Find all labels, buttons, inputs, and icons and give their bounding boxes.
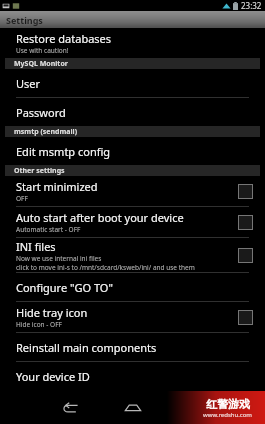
button[interactable]: Start minimized [0,176,265,206]
staticText: Hide tray icon [16,305,88,320]
button[interactable]: User [0,69,265,97]
staticText: Settings [6,14,43,26]
staticText: Use with caution! [16,46,69,55]
button[interactable]: Auto start after boot your device [0,207,265,237]
staticText: MySQL Monitor [14,59,68,69]
staticText: Automatic start - OFF [16,225,81,234]
button[interactable]: Reinstall main components [0,333,265,361]
button[interactable]: Configure "GO TO" [0,273,265,301]
staticText: www.redshu.com [203,411,252,419]
staticText: Your device ID [16,369,90,384]
staticText: Hide icon - OFF [16,320,62,329]
button[interactable]: Edit msmtp config [0,137,265,165]
staticText: INI files [16,239,56,254]
button[interactable]: Hide tray icon [0,302,265,332]
staticText: msmtp (sendmail) [14,127,78,137]
staticText: 红警游戏 [206,397,250,411]
button[interactable]: Back [60,397,82,419]
staticText: Password [16,105,66,120]
staticText: click to move ini-s to /mnt/sdcard/ksweb… [16,263,195,272]
staticText: Reinstall main components [16,340,157,355]
button[interactable]: Restore databases [0,28,265,58]
staticText: 23:32 [241,0,262,11]
staticText: Start minimized [16,179,98,194]
button[interactable]: Password [0,98,265,126]
staticText: Edit msmtp config [16,144,111,159]
staticText: Auto start after boot your device [16,210,184,225]
staticText: Restore databases [16,31,112,46]
button[interactable]: INI files [0,238,265,272]
staticText: Other settings [14,166,65,176]
button[interactable]: Home [122,397,144,419]
staticText: Configure "GO TO" [16,280,113,295]
button[interactable]: Your device ID [0,362,265,390]
staticText: OFF [16,194,28,203]
staticText: User [16,76,41,91]
staticText: Now we use internal ini files [16,254,102,263]
